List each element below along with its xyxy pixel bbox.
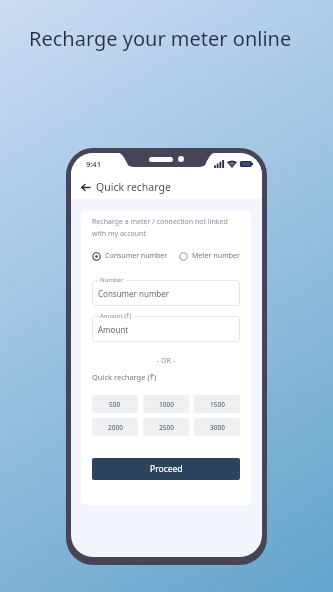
staticText: 1500 [210, 400, 225, 409]
staticText: Recharge your meter online [29, 25, 292, 52]
staticText: - OR - [92, 356, 240, 366]
staticText: Proceed [150, 463, 183, 475]
staticText: 2000 [108, 423, 123, 432]
button[interactable]: Amount [92, 316, 240, 342]
staticText: Number [100, 276, 124, 284]
staticText: Quick recharge [96, 180, 171, 194]
button[interactable]: Back [77, 179, 93, 195]
staticText: 3000 [210, 423, 225, 432]
button[interactable]: 2000 [92, 418, 138, 436]
staticText: 500 [109, 400, 121, 409]
button[interactable]: 500 [92, 395, 138, 413]
button[interactable]: 2500 [143, 418, 189, 436]
staticText: 9:41 [86, 159, 101, 169]
staticText: Meter number [192, 251, 240, 261]
button[interactable]: Proceed [92, 458, 240, 480]
button[interactable]: 1500 [194, 395, 240, 413]
button[interactable]: 3000 [194, 418, 240, 436]
button[interactable]: Consumer number [92, 280, 240, 306]
staticText: Amount (₹) [100, 312, 132, 320]
button[interactable]: Consumer number [92, 251, 168, 261]
button[interactable]: Meter number [179, 251, 240, 261]
staticText: Quick recharge (₹) [92, 372, 157, 382]
staticText: Consumer number [98, 288, 170, 299]
staticText: 2500 [159, 423, 174, 432]
staticText: Consumer number [105, 251, 168, 261]
staticText: Amount [98, 324, 129, 335]
staticText: Recharge a meter / connection not linked… [92, 217, 228, 238]
button[interactable]: 1000 [143, 395, 189, 413]
staticText: 1000 [159, 400, 174, 409]
